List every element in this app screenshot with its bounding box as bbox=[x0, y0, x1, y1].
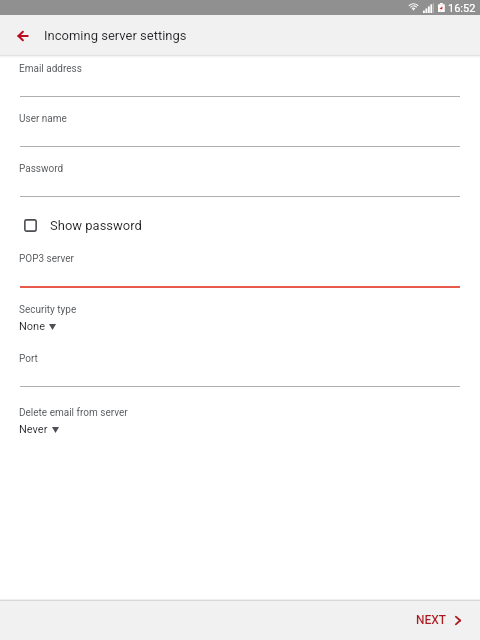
staticText: Incoming server settings bbox=[44, 28, 187, 43]
staticText: Show password bbox=[50, 218, 142, 233]
staticText: Security type bbox=[19, 304, 77, 316]
button[interactable]: NEXT bbox=[402, 600, 474, 640]
staticText: None bbox=[19, 320, 46, 333]
staticText: Delete email from server bbox=[19, 407, 128, 419]
staticText: Email address bbox=[19, 63, 82, 75]
button[interactable]: Show password bbox=[16, 213, 162, 239]
staticText: NEXT bbox=[416, 613, 447, 627]
staticText: POP3 server bbox=[19, 253, 75, 265]
button[interactable]: Navigate up bbox=[9, 22, 37, 50]
staticText: Port bbox=[19, 353, 38, 365]
staticText: User name bbox=[19, 113, 67, 125]
staticText: Never bbox=[19, 423, 48, 436]
button[interactable]: Security type, None bbox=[16, 316, 61, 336]
staticText: Password bbox=[19, 163, 64, 175]
staticText: 16:52 bbox=[448, 2, 476, 15]
button[interactable]: Delete email from server, Never bbox=[16, 419, 64, 439]
